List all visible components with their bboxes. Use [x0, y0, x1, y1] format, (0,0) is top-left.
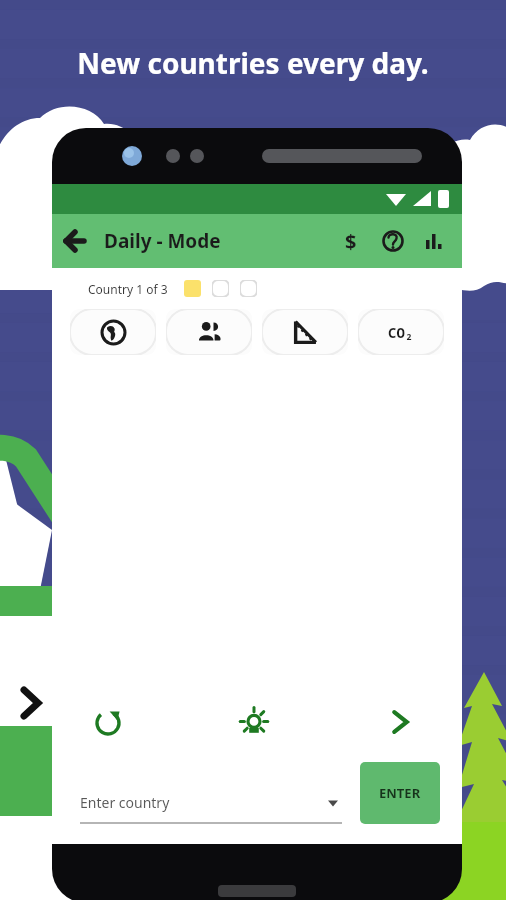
button[interactable]	[212, 280, 229, 297]
button[interactable]: ENTER	[360, 762, 440, 824]
button[interactable]: CO2	[358, 309, 444, 355]
button[interactable]: Area	[262, 309, 348, 355]
button[interactable]: Continent	[70, 309, 156, 355]
staticText: New countries every day.	[77, 44, 429, 82]
button[interactable]: Population	[166, 309, 252, 355]
button[interactable]: Enter country	[80, 793, 342, 824]
button[interactable]: Next	[374, 696, 426, 748]
button[interactable]	[240, 280, 257, 297]
staticText: ENTER	[379, 784, 421, 802]
button[interactable]: Refresh	[82, 696, 134, 748]
button[interactable]: Help	[372, 220, 414, 262]
button[interactable]	[184, 280, 201, 297]
button[interactable]: Currency	[330, 220, 372, 262]
button[interactable]: Hint	[228, 696, 280, 748]
button[interactable]: Back	[52, 218, 98, 264]
staticText: Daily - Mode	[104, 228, 221, 254]
staticText: Country 1 of 3	[88, 281, 168, 297]
staticText: $	[345, 228, 357, 255]
staticText: Enter country	[80, 793, 170, 812]
button[interactable]: Statistics	[414, 220, 456, 262]
staticText: CO₂	[388, 323, 414, 342]
